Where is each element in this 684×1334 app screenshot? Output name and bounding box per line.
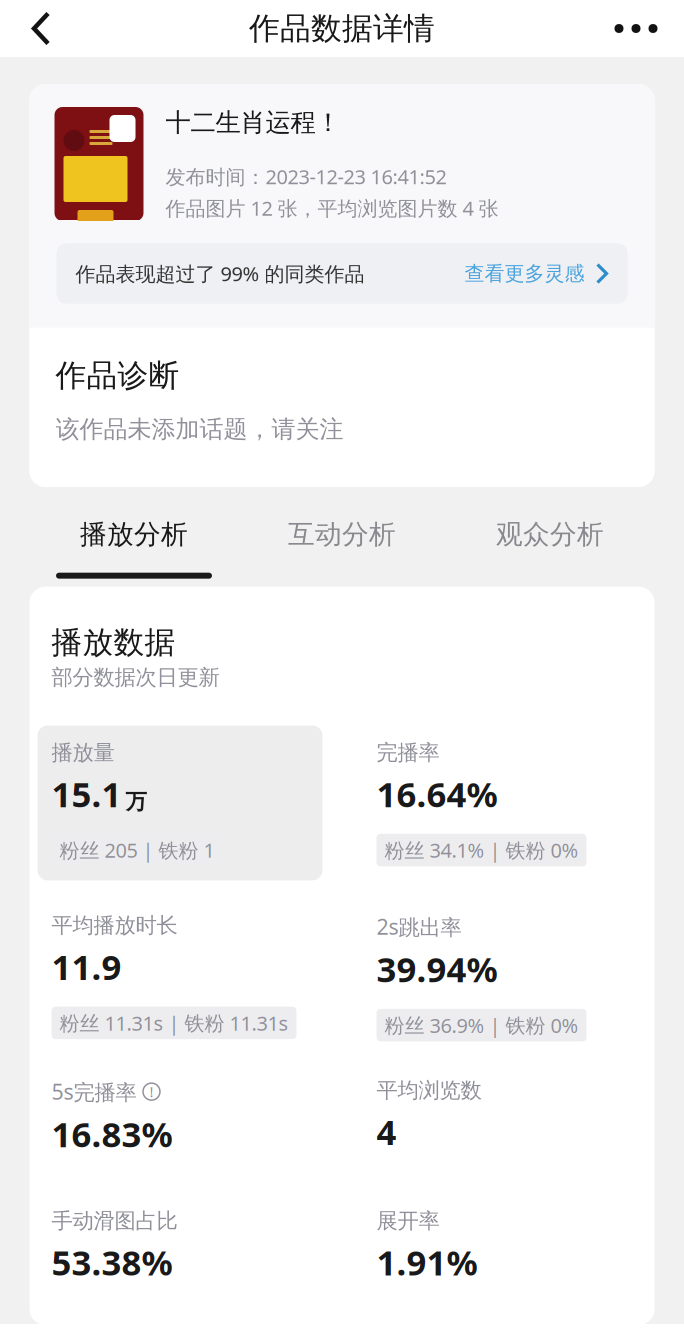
staticText: 播放分析 bbox=[80, 518, 188, 551]
staticText: 展开率 bbox=[376, 1208, 439, 1234]
staticText: 粉丝 36.9% | 铁粉 0% bbox=[384, 1012, 578, 1038]
staticText: 作品图片 12 张，平均浏览图片数 4 张 bbox=[165, 195, 498, 221]
staticText: 十二生肖运程！ bbox=[165, 107, 340, 138]
staticText: 4 bbox=[376, 1109, 396, 1155]
staticText: 该作品未添加话题，请关注 bbox=[55, 414, 343, 444]
staticText: 11.9 bbox=[51, 944, 121, 990]
staticText: 粉丝 34.1% | 铁粉 0% bbox=[384, 837, 578, 863]
button[interactable]: Back bbox=[0, 0, 71, 56]
staticText: 作品数据详情 bbox=[249, 10, 435, 47]
staticText: 平均浏览数 bbox=[376, 1077, 481, 1104]
staticText: 2s跳出率 bbox=[376, 912, 461, 941]
staticText: 观众分析 bbox=[496, 518, 604, 551]
button[interactable]: 互动分析 bbox=[238, 518, 446, 579]
staticText: 15.1 bbox=[51, 771, 121, 817]
button[interactable]: 观众分析 bbox=[446, 518, 654, 579]
button[interactable]: More options bbox=[599, 1, 684, 56]
staticText: 39.94% bbox=[376, 946, 497, 992]
staticText: 粉丝 11.31s | 铁粉 11.31s bbox=[59, 1010, 288, 1036]
staticText: 发布时间：2023-12-23 16:41:52 bbox=[165, 163, 446, 190]
staticText: 查看更多灵感 bbox=[464, 261, 584, 286]
staticText: 粉丝 205 | 铁粉 1 bbox=[59, 837, 214, 863]
staticText: 播放数据 bbox=[51, 624, 175, 661]
staticText: 万 bbox=[125, 789, 146, 815]
staticText: 播放量 bbox=[51, 740, 114, 766]
button[interactable]: 作品表现超过了 99% 的同类作品 bbox=[56, 243, 627, 304]
staticText: 5s完播率 bbox=[51, 1077, 136, 1106]
staticText: 16.64% bbox=[376, 771, 497, 817]
staticText: 16.83% bbox=[51, 1111, 172, 1157]
staticText: 手动滑图占比 bbox=[51, 1208, 177, 1234]
staticText: 互动分析 bbox=[288, 518, 396, 551]
staticText: 1.91% bbox=[376, 1239, 477, 1285]
button[interactable]: 播放分析 bbox=[30, 518, 238, 579]
staticText: 作品诊断 bbox=[55, 357, 179, 394]
staticText: 53.38% bbox=[51, 1239, 172, 1285]
staticText: 完播率 bbox=[376, 740, 439, 766]
staticText: 部分数据次日更新 bbox=[51, 664, 219, 691]
staticText: 平均播放时长 bbox=[51, 912, 177, 939]
staticText: ! bbox=[149, 1082, 153, 1101]
staticText: 作品表现超过了 99% 的同类作品 bbox=[75, 260, 364, 287]
